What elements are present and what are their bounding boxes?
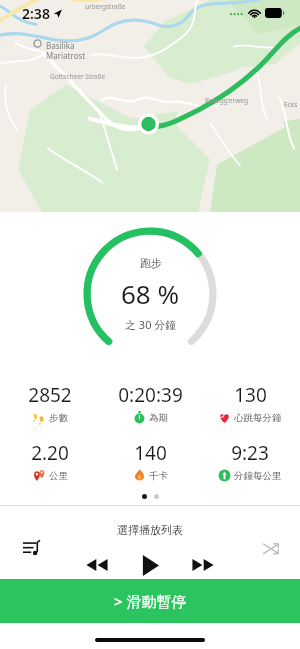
staticText: 千卡 [149,470,168,482]
button[interactable]: 9:23 [200,440,300,482]
staticText: 2852 [28,382,72,408]
staticText: 分鐘每公里 [234,470,282,482]
button[interactable]: 140 [100,440,200,482]
staticText: 心跳每分鐘 [234,412,282,424]
button[interactable]: Play [129,544,171,586]
button[interactable]: Shuffle [254,531,288,565]
staticText: 步數 [49,412,68,424]
staticText: 之 30 分鐘 [125,317,177,332]
staticText: Ecks [284,100,298,109]
staticText: 選擇播放列表 [117,523,183,537]
button[interactable]: 0:20:39 [100,382,200,424]
staticText: 2:38 [22,4,50,23]
button[interactable]: Previous [79,547,115,583]
staticText: > 滑動暫停 [114,591,187,611]
staticText: 140 [134,440,167,466]
staticText: 為期 [149,412,168,424]
staticText: Rosegg'erweg [205,96,248,105]
staticText: urbergstraße [85,2,126,11]
button[interactable]: > 滑動暫停 [0,579,300,623]
staticText: 公里 [49,470,68,482]
staticText: 9:23 [231,440,269,466]
staticText: Basilika Mariatrost [46,40,86,61]
staticText: Gottscheer Straße [50,72,106,81]
staticText: 跑步 [140,256,162,270]
button[interactable]: 2852 [0,382,100,424]
staticText: 68 % [121,276,180,311]
staticText: 2.20 [31,440,69,466]
button[interactable]: Playlist [14,531,48,565]
button[interactable]: 130 [200,382,300,424]
staticText: 0:20:39 [118,382,183,408]
button[interactable]: 2.20 [0,440,100,482]
staticText: 130 [234,382,267,408]
button[interactable]: Next [185,547,221,583]
